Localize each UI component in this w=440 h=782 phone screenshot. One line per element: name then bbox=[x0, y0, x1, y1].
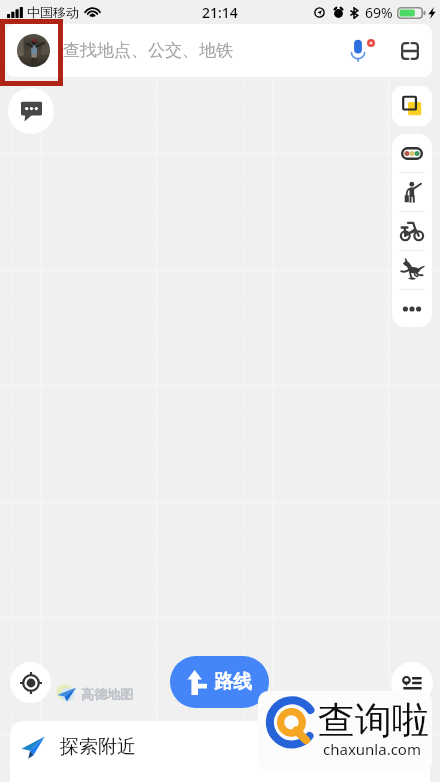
button[interactable]: Map layers bbox=[392, 86, 432, 126]
staticText: 查找地点、公交、地铁 bbox=[63, 40, 233, 61]
button[interactable]: My location bbox=[10, 662, 51, 703]
staticText: 中国移动 bbox=[27, 4, 79, 20]
button[interactable]: Ride hailing bbox=[392, 173, 432, 211]
button[interactable]: Horse mode bbox=[392, 251, 432, 289]
staticText: 查询啦 bbox=[318, 697, 429, 744]
button[interactable]: Profile bbox=[17, 34, 50, 67]
button[interactable]: Nearby list bbox=[391, 662, 433, 704]
button[interactable]: 路线 bbox=[170, 656, 269, 708]
staticText: 路线 bbox=[214, 670, 252, 694]
button[interactable]: Bike bbox=[392, 212, 432, 250]
staticText: 69% bbox=[365, 3, 393, 22]
staticText: 21:14 bbox=[202, 3, 238, 22]
button[interactable]: More tools bbox=[392, 290, 432, 327]
button[interactable]: Scan QR code bbox=[390, 31, 430, 71]
button[interactable]: Voice search bbox=[344, 31, 384, 71]
staticText: chaxunla.com bbox=[323, 739, 421, 759]
button[interactable]: Messages bbox=[8, 88, 54, 134]
button[interactable]: Traffic conditions bbox=[392, 134, 432, 172]
staticText: 高德地图 bbox=[81, 686, 133, 702]
button[interactable]: 探索附近 bbox=[10, 721, 430, 782]
staticText: 探索附近 bbox=[60, 735, 136, 759]
